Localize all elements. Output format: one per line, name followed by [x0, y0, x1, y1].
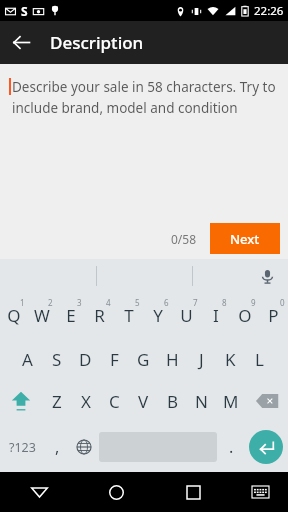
staticText: Next — [230, 230, 260, 248]
staticText: 8 — [222, 297, 227, 308]
staticText: W — [34, 304, 50, 327]
staticText: 3 — [77, 297, 82, 308]
button[interactable]: , — [44, 422, 70, 472]
button[interactable]: Change language — [70, 422, 97, 472]
button[interactable]: R — [85, 293, 114, 338]
button[interactable]: Voice input — [254, 263, 280, 289]
staticText: B — [167, 390, 179, 413]
staticText: S — [21, 3, 28, 19]
staticText: F — [110, 348, 119, 371]
button[interactable]: P — [259, 293, 288, 338]
button[interactable]: E — [56, 293, 85, 338]
staticText: I — [213, 304, 219, 327]
staticText: ?123 — [9, 439, 36, 456]
staticText: G — [137, 348, 150, 371]
button[interactable]: Back — [0, 472, 78, 512]
button[interactable]: X — [71, 380, 100, 422]
button[interactable]: K — [216, 338, 245, 380]
button[interactable]: N — [187, 380, 216, 422]
staticText: J — [199, 348, 204, 371]
staticText: 2 — [48, 297, 53, 308]
button[interactable]: Shift — [0, 380, 42, 422]
button[interactable]: S — [42, 338, 71, 380]
button[interactable]: Backspace — [245, 380, 288, 422]
button[interactable]: W — [28, 293, 56, 338]
staticText: E — [66, 304, 76, 327]
staticText: 4 — [106, 297, 111, 308]
button[interactable] — [193, 259, 288, 293]
staticText: T — [124, 304, 134, 327]
staticText: U — [180, 304, 193, 327]
staticText: 9 — [251, 297, 256, 308]
button[interactable]: Enter — [249, 430, 283, 464]
staticText: Y — [153, 304, 163, 327]
staticText: Q — [7, 304, 21, 327]
staticText: . — [229, 436, 234, 458]
staticText: , — [55, 436, 60, 458]
button[interactable]: I — [201, 293, 230, 338]
staticText: 5 — [135, 297, 140, 308]
staticText: Describe your sale in 58 characters. Try… — [12, 78, 278, 117]
button[interactable]: Q — [0, 293, 28, 338]
staticText: 22:26 — [254, 3, 284, 19]
staticText: S — [52, 348, 62, 371]
staticText: O — [238, 304, 252, 327]
button[interactable]: G — [129, 338, 158, 380]
staticText: 0/58 — [171, 231, 197, 247]
staticText: K — [225, 348, 236, 371]
staticText: Z — [52, 390, 62, 413]
button[interactable]: M — [216, 380, 245, 422]
staticText: 7 — [193, 297, 198, 308]
button[interactable]: D — [71, 338, 100, 380]
staticText: X — [81, 390, 91, 413]
button[interactable]: Recent apps — [155, 472, 232, 512]
staticText: M — [223, 390, 239, 413]
button[interactable]: C — [100, 380, 129, 422]
button[interactable]: . — [219, 422, 243, 472]
staticText: P — [268, 304, 279, 327]
staticText: C — [109, 390, 120, 413]
staticText: 6 — [164, 297, 169, 308]
staticText: 0 — [280, 297, 285, 308]
button[interactable]: Back — [0, 21, 43, 64]
button[interactable]: F — [100, 338, 129, 380]
button[interactable]: O — [230, 293, 259, 338]
staticText: 1 — [20, 297, 25, 308]
button[interactable]: H — [158, 338, 187, 380]
button[interactable]: Z — [42, 380, 71, 422]
staticText: V — [138, 390, 149, 413]
staticText: L — [255, 348, 264, 371]
button[interactable]: J — [187, 338, 216, 380]
button[interactable]: U — [172, 293, 201, 338]
staticText: N — [195, 390, 208, 413]
staticText: A — [22, 348, 33, 371]
button[interactable]: B — [158, 380, 187, 422]
button[interactable]: ?123 — [0, 422, 44, 472]
button[interactable]: Next — [210, 223, 280, 254]
staticText: D — [79, 348, 92, 371]
button[interactable]: Home — [78, 472, 155, 512]
button[interactable]: T — [114, 293, 143, 338]
staticText: Description — [50, 31, 144, 54]
button[interactable]: V — [129, 380, 158, 422]
button[interactable]: Switch keyboard — [232, 472, 288, 512]
button[interactable]: Y — [143, 293, 172, 338]
button[interactable]: L — [245, 338, 274, 380]
staticText: H — [166, 348, 179, 371]
button[interactable]: A — [13, 338, 42, 380]
staticText: R — [94, 304, 105, 327]
